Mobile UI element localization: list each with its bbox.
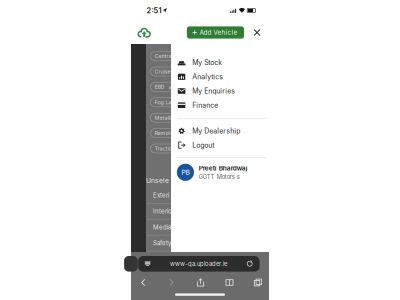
staticText: My Stock bbox=[192, 58, 222, 67]
staticText: Add Vehicle bbox=[200, 29, 238, 36]
button[interactable]: Finance bbox=[171, 98, 269, 112]
staticText: Safety bbox=[153, 239, 171, 247]
staticText: Sales bbox=[153, 255, 168, 263]
button[interactable]: Logout bbox=[171, 138, 269, 152]
button[interactable]: Analytics bbox=[171, 70, 269, 84]
staticText: Interio bbox=[153, 207, 172, 215]
button[interactable]: Bookmarks bbox=[215, 274, 244, 291]
button[interactable]: Close bbox=[244, 23, 269, 42]
button[interactable]: Back bbox=[129, 274, 157, 291]
staticText: × bbox=[168, 83, 172, 91]
staticText: Central bbox=[154, 53, 172, 59]
staticText: www-qa.uploader.ie bbox=[170, 260, 227, 267]
staticText: Media bbox=[153, 223, 171, 231]
button[interactable]: My Enquiries bbox=[171, 84, 269, 98]
button[interactable]: Home bbox=[131, 24, 155, 41]
staticText: Analytics bbox=[192, 73, 223, 81]
staticText: Metallic bbox=[154, 114, 173, 121]
staticText: Finance bbox=[192, 101, 218, 109]
staticText: GGTT Motors s bbox=[199, 173, 240, 180]
button[interactable]: Tabs bbox=[244, 274, 272, 291]
button[interactable]: Add Vehicle bbox=[187, 26, 244, 39]
staticText: My Enquiries bbox=[192, 87, 235, 95]
staticText: EBD bbox=[154, 84, 164, 90]
staticText: Logout bbox=[192, 141, 214, 149]
staticText: Fog Lam bbox=[154, 99, 176, 106]
staticText: Exteri bbox=[153, 192, 169, 199]
staticText: Preeti Bhardwaj bbox=[199, 164, 248, 172]
staticText: PB bbox=[181, 168, 189, 176]
staticText: Cruise C bbox=[154, 68, 176, 75]
staticText: 2:51 bbox=[146, 6, 161, 15]
button[interactable]: My Stock bbox=[171, 55, 269, 70]
staticText: Unsele bbox=[146, 176, 169, 185]
button[interactable]: My Dealership bbox=[171, 124, 269, 138]
staticText: Traction bbox=[154, 145, 174, 152]
button[interactable]: Forward bbox=[157, 274, 186, 291]
button[interactable]: PB bbox=[171, 161, 269, 183]
button[interactable]: Share bbox=[186, 274, 215, 291]
staticText: My Dealership bbox=[192, 127, 240, 135]
staticText: Remote bbox=[154, 130, 173, 136]
